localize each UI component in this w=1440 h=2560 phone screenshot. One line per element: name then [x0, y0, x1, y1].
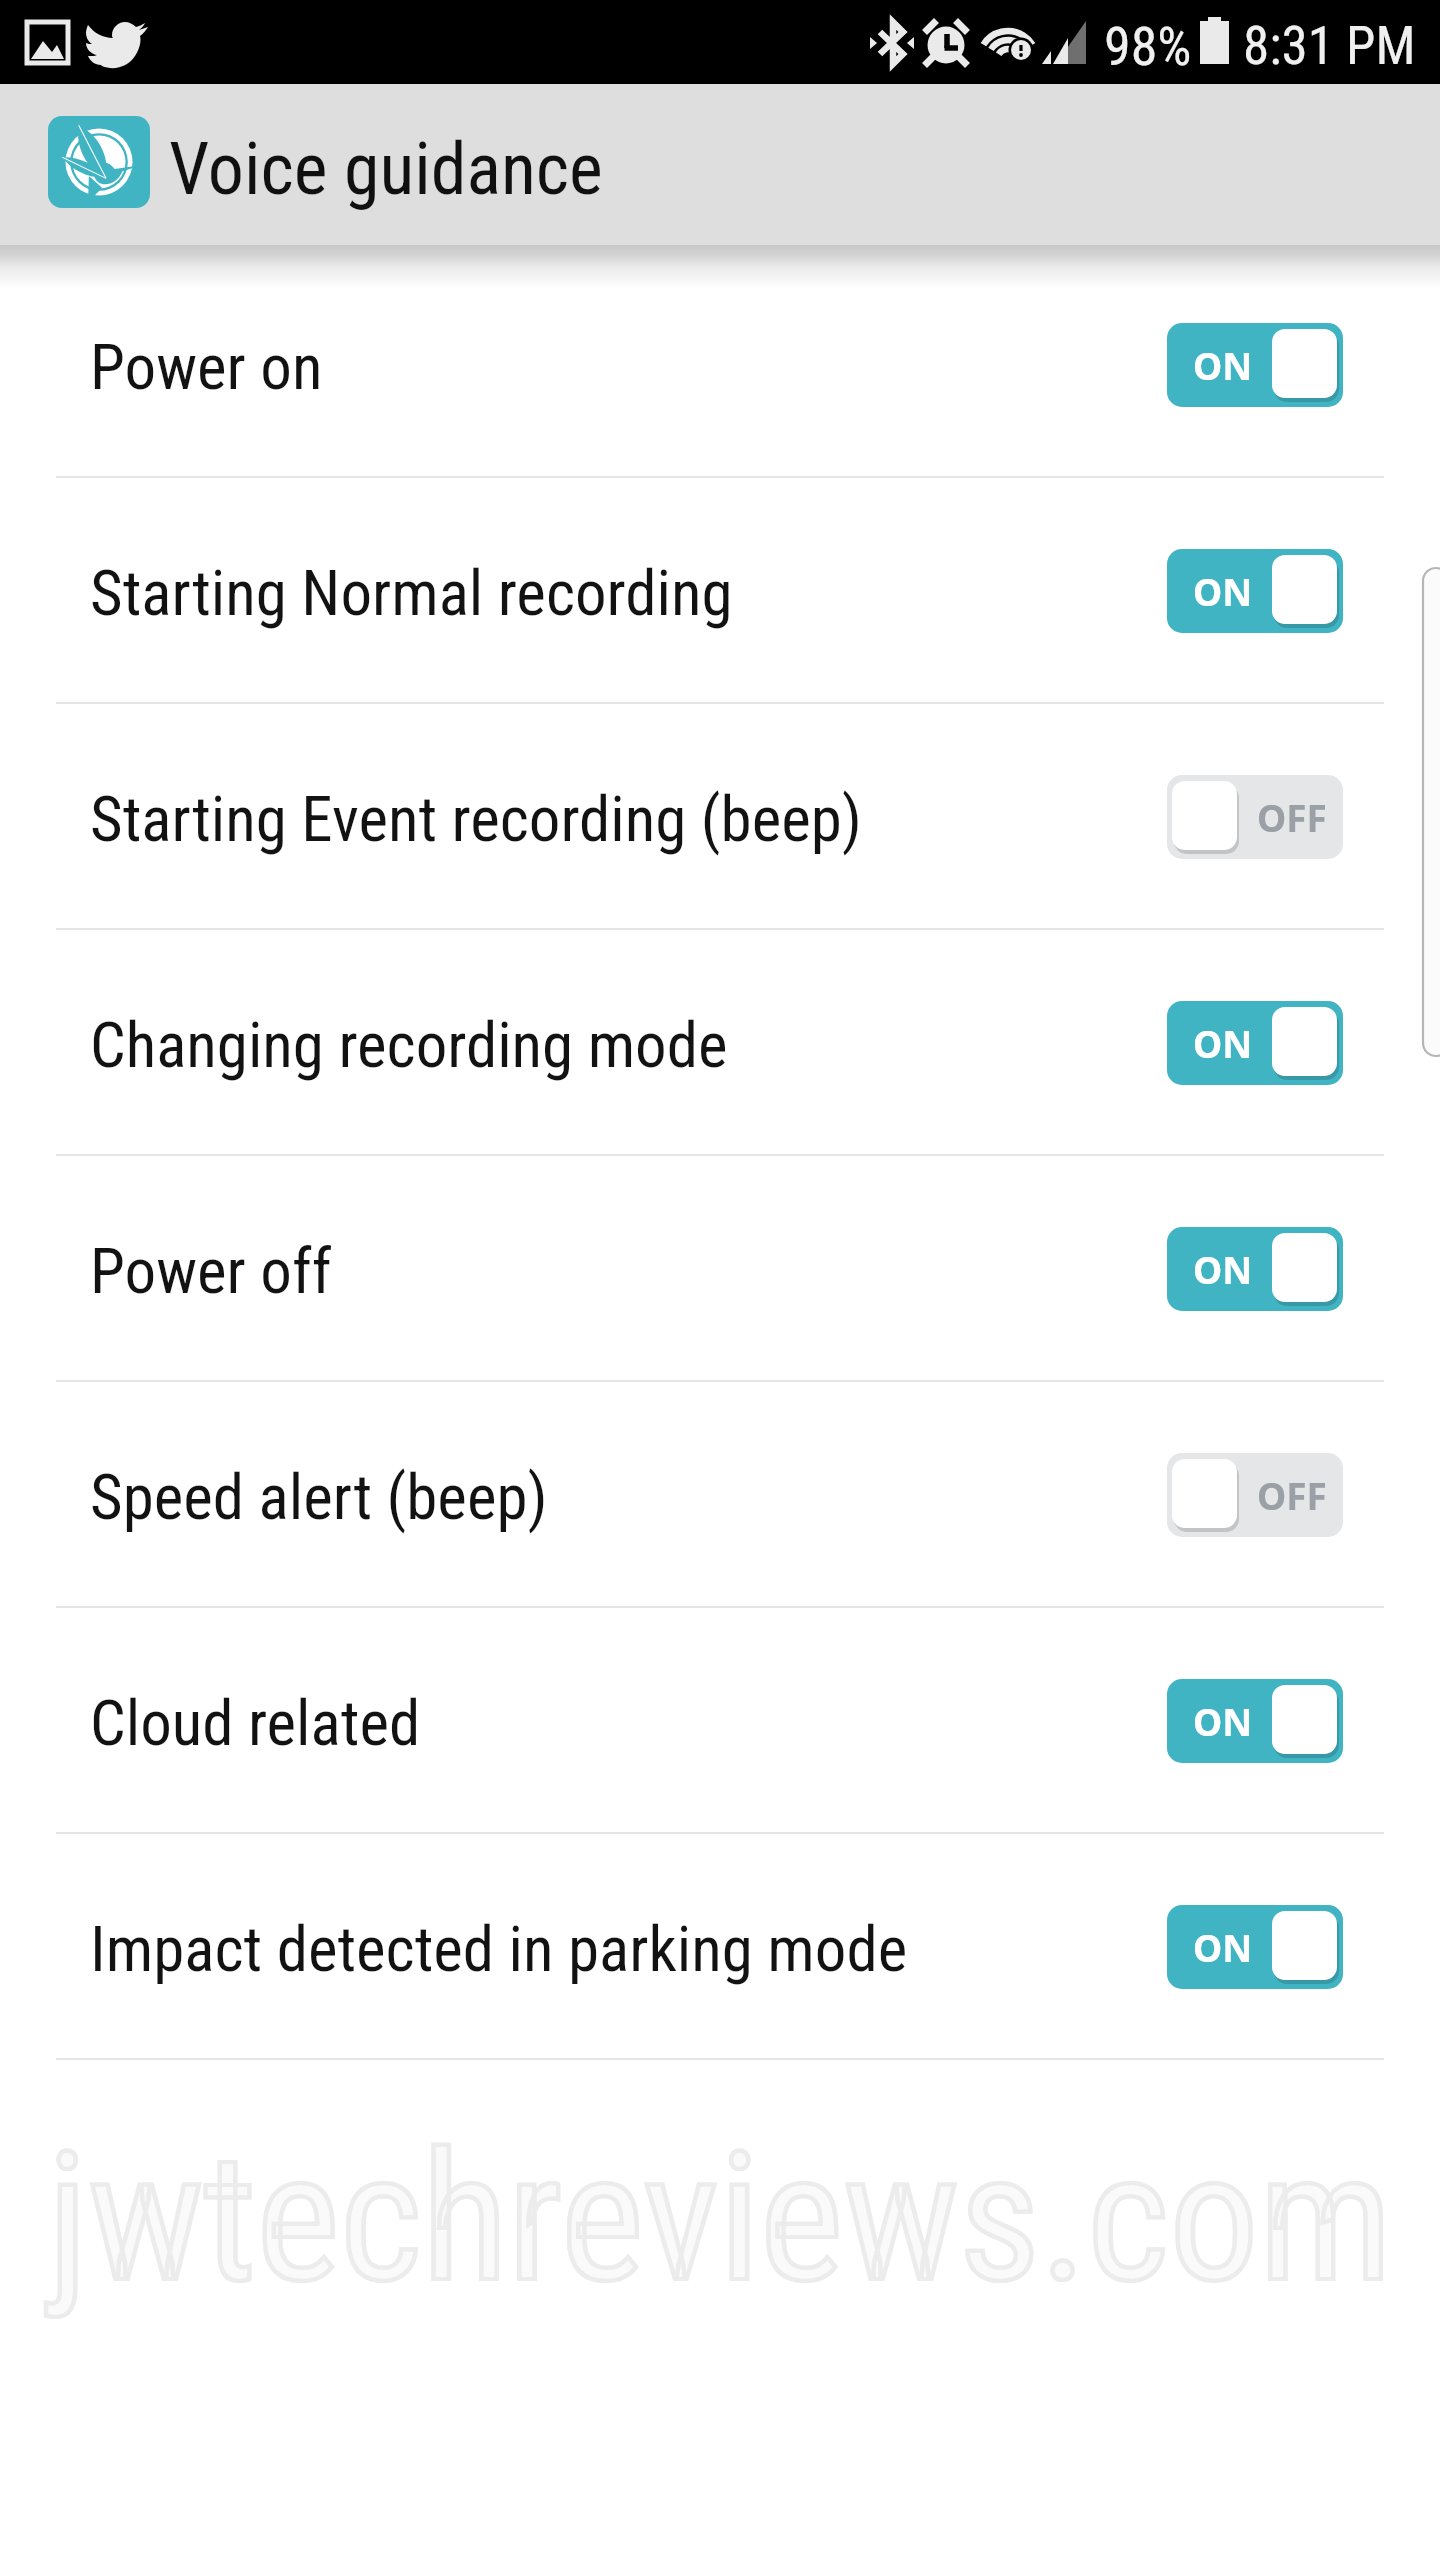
staticText: jwtechreviews.com — [48, 2114, 1393, 2323]
staticText: ON — [1193, 1018, 1253, 1068]
button[interactable]: Changing recording mode — [0, 930, 1440, 1156]
staticText: Power off — [90, 1235, 332, 1309]
staticText: OFF — [1257, 1470, 1327, 1520]
button[interactable]: Power on — [0, 252, 1440, 478]
staticText: ON — [1193, 340, 1253, 390]
button[interactable]: Starting Event recording (beep) — [0, 704, 1440, 930]
staticText: ON — [1193, 566, 1253, 616]
staticText: Cloud related — [90, 1687, 421, 1761]
button[interactable]: Enabled — [1167, 549, 1343, 633]
button[interactable]: Impact detected in parking mode — [0, 1834, 1440, 2060]
staticText: Power on — [90, 331, 323, 405]
button[interactable]: Disabled — [1167, 775, 1343, 859]
staticText: ON — [1193, 1244, 1253, 1294]
staticText: 98% — [1104, 15, 1192, 78]
staticText: Starting Normal recording — [90, 557, 733, 631]
staticText: jwtechreviews.com — [48, 2114, 1393, 2323]
button[interactable]: Disabled — [1167, 1453, 1343, 1537]
button[interactable]: Speed alert (beep) — [0, 1382, 1440, 1608]
button[interactable]: BlackVue app icon — [48, 116, 150, 208]
staticText: Voice guidance — [169, 127, 603, 211]
staticText: Speed alert (beep) — [90, 1461, 548, 1535]
button[interactable]: Enabled — [1167, 1227, 1343, 1311]
staticText: Starting Event recording (beep) — [90, 783, 862, 857]
staticText: ON — [1193, 1922, 1253, 1972]
staticText: Changing recording mode — [90, 1009, 728, 1083]
button[interactable]: Power off — [0, 1156, 1440, 1382]
staticText: Impact detected in parking mode — [90, 1913, 908, 1987]
button[interactable]: Enabled — [1167, 1679, 1343, 1763]
staticText: 8:31 PM — [1243, 15, 1416, 77]
staticText: OFF — [1257, 792, 1327, 842]
button[interactable]: Enabled — [1167, 1905, 1343, 1989]
staticText: ON — [1193, 1696, 1253, 1746]
button[interactable]: Enabled — [1167, 1001, 1343, 1085]
button[interactable]: Enabled — [1167, 323, 1343, 407]
button[interactable]: Cloud related — [0, 1608, 1440, 1834]
button[interactable]: Starting Normal recording — [0, 478, 1440, 704]
